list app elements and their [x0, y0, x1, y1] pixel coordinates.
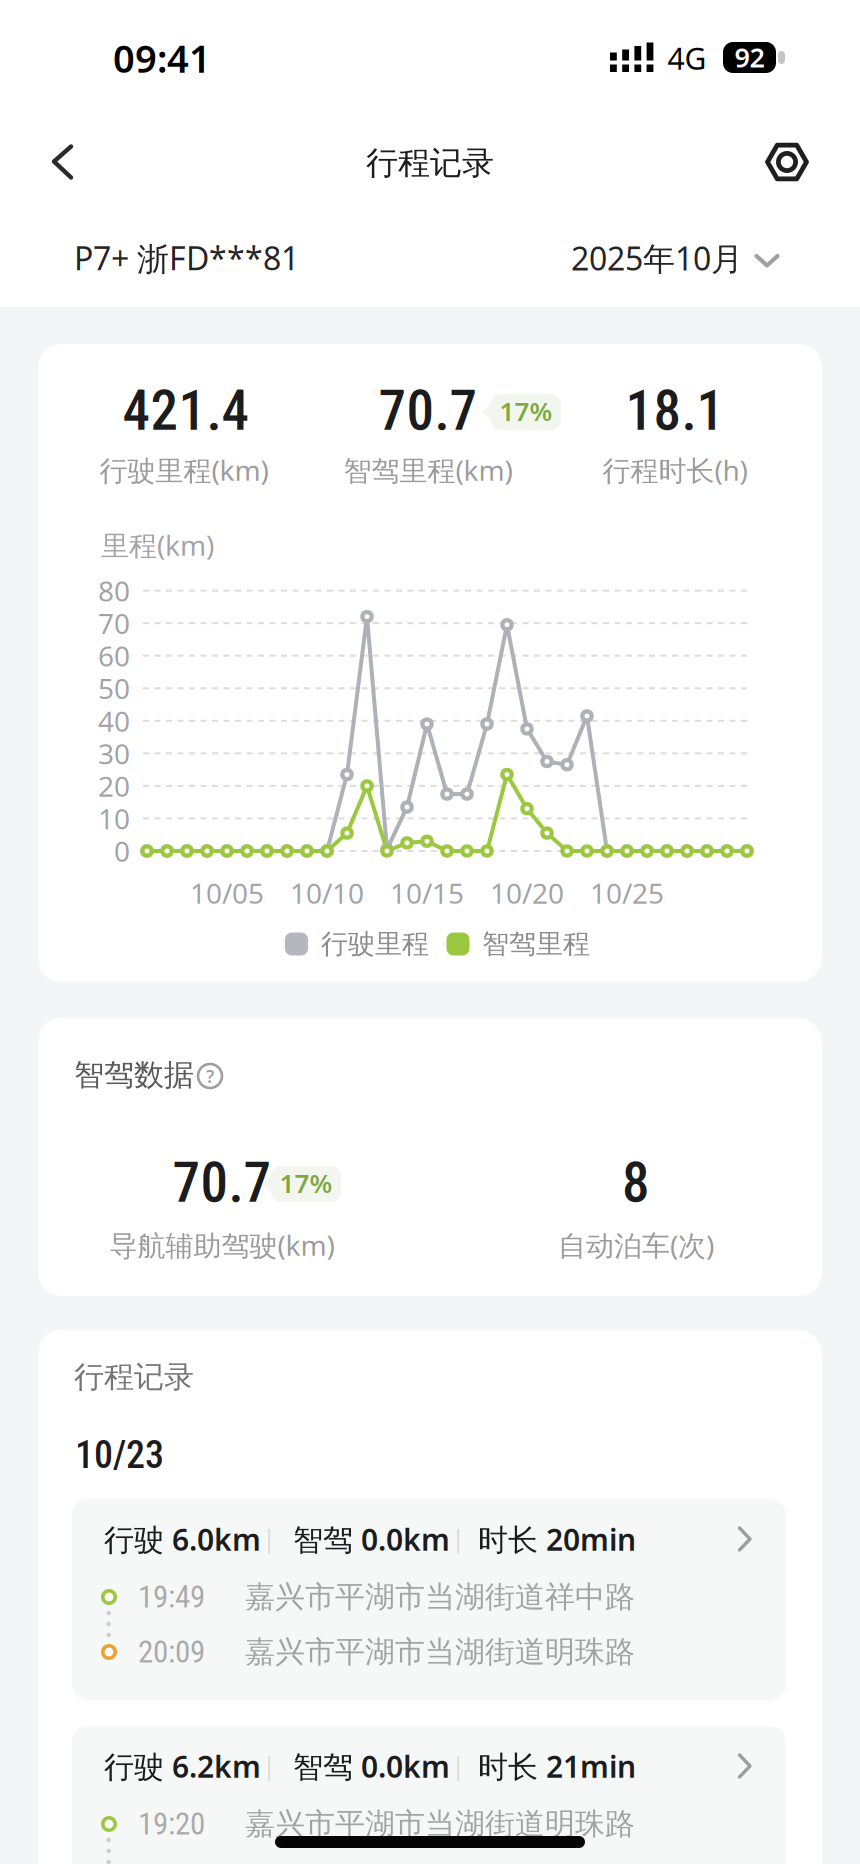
staticText: 智驾里程 — [482, 927, 590, 961]
staticText: 80 — [98, 571, 130, 610]
staticText: 2025年10月 — [571, 236, 743, 280]
staticText: 18.1 — [625, 379, 724, 443]
button[interactable] — [34, 127, 91, 197]
staticText: 4G — [667, 38, 706, 78]
staticText: 智驾数据 — [74, 1056, 194, 1094]
staticText: 行驶 6.2km — [104, 1746, 261, 1786]
staticText: 20 — [98, 767, 130, 805]
staticText: 92 — [734, 39, 764, 75]
staticText: 8 — [622, 1151, 650, 1215]
staticText: 60 — [98, 637, 130, 675]
staticText: 嘉兴市平湖市当湖街道明珠路 — [245, 1633, 635, 1671]
staticText: 421.4 — [122, 379, 249, 443]
staticText: 导航辅助驾驶(km) — [109, 1226, 334, 1264]
staticText: 0 — [114, 832, 130, 870]
staticText: 10/25 — [590, 874, 664, 912]
staticText: 30 — [98, 734, 130, 772]
staticText: | — [451, 1747, 465, 1783]
staticText: 行程时长(h) — [602, 451, 747, 489]
staticText: ? — [206, 1064, 214, 1088]
staticText: 自动泊车(次) — [558, 1226, 714, 1264]
staticText: 行程记录 — [74, 1358, 194, 1396]
staticText: | — [262, 1747, 276, 1783]
staticText: 嘉兴市平湖市当湖街道明珠路 — [245, 1805, 635, 1843]
staticText: | — [451, 1520, 465, 1556]
staticText: | — [262, 1520, 276, 1556]
staticText: 19:20 — [138, 1806, 205, 1842]
staticText: 20:09 — [138, 1634, 205, 1670]
button[interactable]: ? — [188, 1054, 232, 1098]
staticText: 行程记录 — [366, 143, 494, 183]
button[interactable]: 2025年10月 — [571, 236, 779, 280]
staticText: 行驶里程(km) — [99, 451, 268, 489]
staticText: 10 — [98, 799, 130, 837]
staticText: 70.7 — [172, 1151, 271, 1215]
button[interactable]: 行驶 6.0km — [72, 1499, 786, 1700]
staticText: 10/05 — [190, 874, 264, 912]
staticText: 17% — [279, 1165, 332, 1201]
staticText: P7+ 浙FD***81 — [74, 236, 299, 280]
staticText: 70 — [98, 604, 130, 642]
staticText: 智驾 0.0km — [293, 1519, 450, 1559]
staticText: 50 — [98, 669, 130, 707]
staticText: 时长 21min — [478, 1746, 636, 1786]
staticText: 10/10 — [290, 874, 364, 912]
staticText: 行驶里程 — [321, 927, 429, 961]
button[interactable] — [753, 128, 821, 196]
staticText: 10/23 — [75, 1433, 164, 1477]
staticText: 智驾 0.0km — [293, 1746, 450, 1786]
staticText: 里程(km) — [101, 526, 214, 564]
staticText: 70.7 — [378, 379, 477, 443]
staticText: 嘉兴市平湖市当湖街道祥中路 — [245, 1578, 635, 1616]
staticText: 时长 20min — [478, 1519, 636, 1559]
staticText: 行驶 6.0km — [104, 1519, 261, 1559]
staticText: 10/20 — [490, 874, 564, 912]
staticText: 10/15 — [390, 874, 464, 912]
staticText: 17% — [499, 393, 552, 429]
staticText: 09:41 — [113, 32, 211, 84]
button[interactable]: 行驶 6.2km — [72, 1726, 786, 1864]
staticText: 19:49 — [138, 1579, 205, 1615]
staticText: 智驾里程(km) — [343, 451, 512, 489]
staticText: 40 — [98, 702, 130, 740]
